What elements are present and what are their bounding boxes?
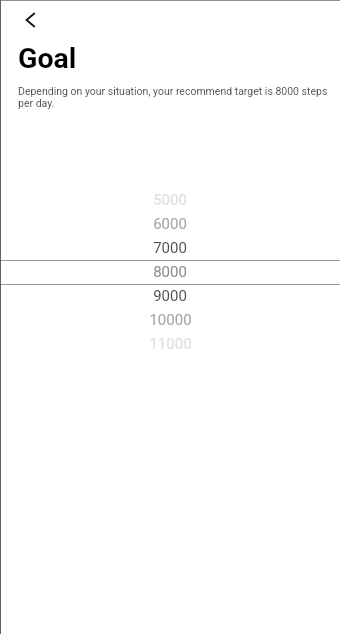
button[interactable]: 11000: [0, 332, 340, 356]
button[interactable]: 9000: [0, 284, 340, 308]
staticText: Goal: [18, 42, 77, 75]
staticText: 9000: [153, 287, 187, 305]
button[interactable]: 8000: [0, 260, 340, 284]
staticText: 8000: [153, 263, 187, 281]
button[interactable]: Back: [12, 2, 48, 38]
button[interactable]: 10000: [0, 308, 340, 332]
button[interactable]: 6000: [0, 212, 340, 236]
staticText: 10000: [149, 311, 192, 329]
button[interactable]: 5000: [0, 188, 340, 212]
button[interactable]: 7000: [0, 236, 340, 260]
staticText: 7000: [153, 239, 187, 257]
staticText: 5000: [153, 191, 187, 209]
staticText: Depending on your situation, your recomm…: [18, 85, 328, 109]
staticText: 6000: [153, 215, 187, 233]
staticText: 11000: [149, 335, 192, 353]
